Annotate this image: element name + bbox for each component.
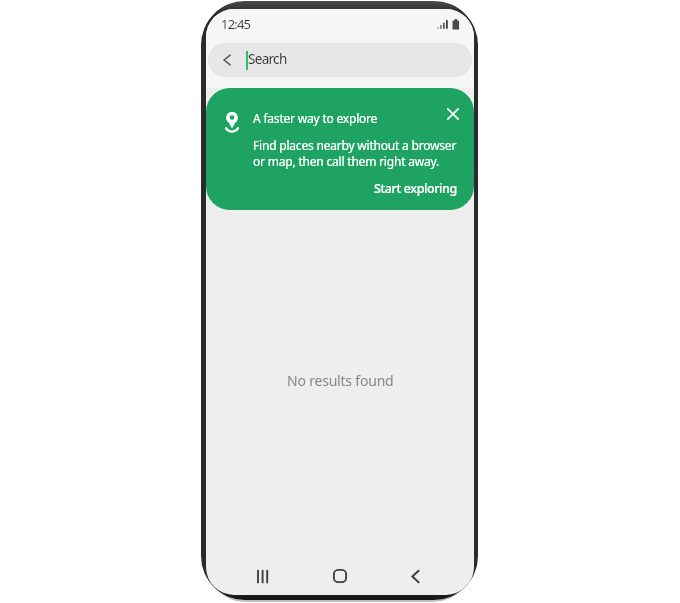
staticText: 12:45 (221, 15, 251, 33)
staticText: or map, then call them right away. (253, 153, 439, 169)
staticText: Start exploring (374, 180, 457, 197)
button[interactable]: Search (208, 43, 472, 77)
button[interactable] (442, 103, 464, 125)
button[interactable] (249, 562, 277, 590)
staticText: Search (248, 50, 287, 68)
button[interactable] (326, 562, 354, 590)
staticText: Find places nearby without a browser (253, 137, 457, 153)
staticText: A faster way to explore (253, 110, 378, 126)
button[interactable]: A faster way to explore (206, 88, 474, 210)
staticText: No results found (287, 371, 394, 390)
button[interactable] (401, 562, 429, 590)
button[interactable]: Start exploring (365, 175, 466, 202)
